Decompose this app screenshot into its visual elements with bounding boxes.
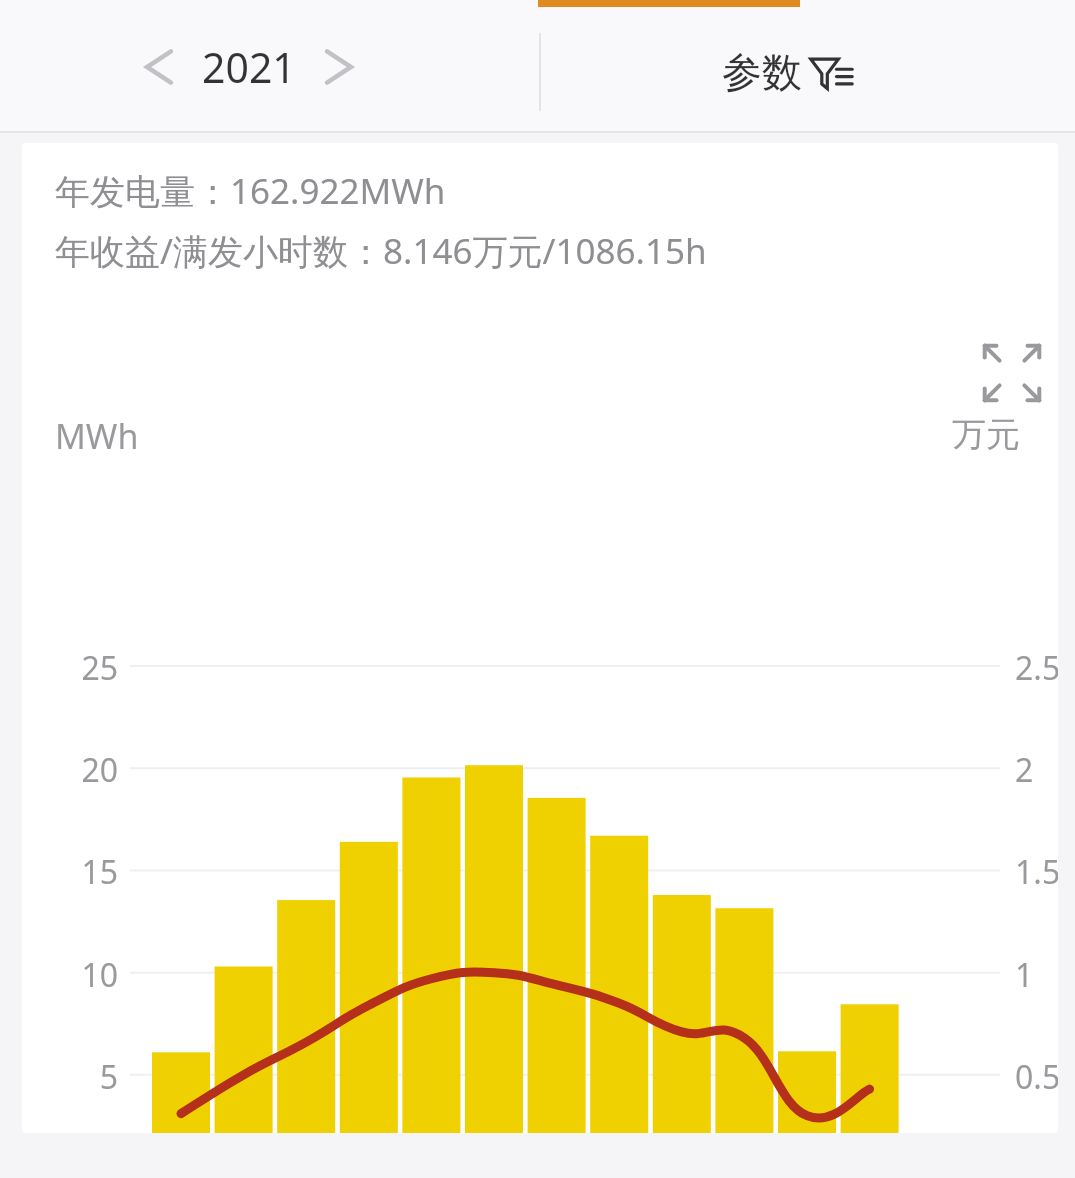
staticText: 万元 [952, 413, 1020, 456]
button[interactable]: Previous year [130, 38, 188, 96]
staticText: MWh [55, 413, 139, 459]
button[interactable]: Fullscreen [967, 328, 1057, 418]
button[interactable]: 参数 [722, 33, 854, 111]
button[interactable]: Next year [310, 38, 368, 96]
staticText: 2021 [202, 39, 296, 95]
staticText: 2.5 [1015, 646, 1058, 690]
staticText: 1.5 [1015, 850, 1058, 894]
staticText: 20 [81, 748, 118, 792]
staticText: 参数 [722, 47, 802, 97]
staticText: 5 [99, 1055, 118, 1099]
staticText: 10 [81, 953, 118, 997]
staticText: 2 [1015, 748, 1034, 792]
staticText: 年收益/满发小时数：8.146万元/1086.15h [55, 227, 707, 275]
staticText: 1 [1015, 953, 1034, 997]
button[interactable]: Previous year [130, 30, 368, 104]
staticText: 0.5 [1015, 1055, 1058, 1099]
staticText: 年发电量：162.922MWh [55, 167, 446, 215]
staticText: 15 [81, 850, 118, 894]
staticText: 25 [81, 646, 118, 690]
